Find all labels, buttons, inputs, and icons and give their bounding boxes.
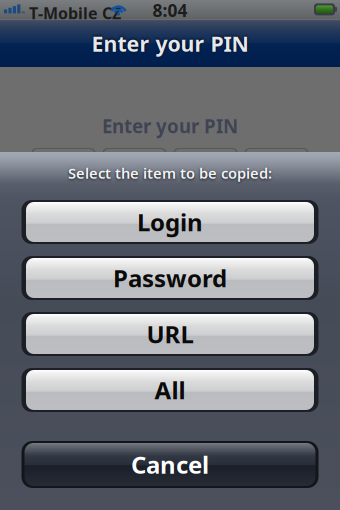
staticText: Login [137, 206, 203, 238]
button[interactable]: Login [21, 200, 318, 244]
staticText: Enter your PIN [91, 29, 248, 58]
button[interactable]: Cancel [21, 441, 318, 488]
staticText: Enter your PIN [102, 114, 238, 138]
staticText: 8:04 [152, 0, 187, 22]
button[interactable]: All [21, 368, 318, 412]
staticText: Password [113, 262, 227, 294]
staticText: URL [146, 318, 193, 350]
staticText: Select the item to be copied: [68, 163, 272, 183]
button[interactable]: URL [21, 312, 318, 356]
staticText: All [154, 374, 185, 406]
staticText: T-Mobile CZ [29, 2, 121, 24]
staticText: Cancel [131, 449, 209, 480]
button[interactable]: Password [21, 256, 318, 300]
